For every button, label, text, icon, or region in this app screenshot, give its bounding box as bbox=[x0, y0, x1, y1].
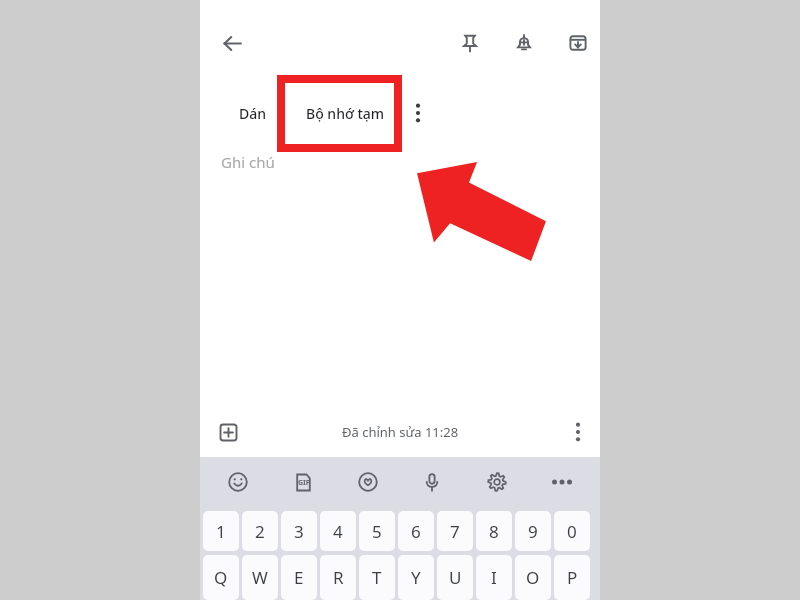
staticText: Bộ nhớ tạm bbox=[306, 104, 385, 123]
staticText: 4 bbox=[333, 520, 343, 543]
staticText: 7 bbox=[450, 520, 460, 543]
staticText: T bbox=[372, 566, 382, 589]
button[interactable]: E bbox=[281, 555, 317, 600]
button[interactable]: Archive bbox=[562, 27, 594, 59]
button[interactable]: Emoji bbox=[223, 467, 253, 497]
staticText: Ghi chú bbox=[221, 152, 275, 172]
button[interactable]: More bbox=[547, 467, 577, 497]
staticText: 2 bbox=[255, 520, 265, 543]
button[interactable]: 6 bbox=[398, 511, 434, 551]
button[interactable]: 4 bbox=[320, 511, 356, 551]
button[interactable]: More options bbox=[403, 88, 433, 138]
button[interactable]: Add bbox=[211, 415, 245, 449]
button[interactable]: Stickers bbox=[353, 467, 383, 497]
button[interactable]: Dán bbox=[218, 88, 288, 138]
button[interactable]: 1 bbox=[203, 511, 239, 551]
button[interactable]: More bbox=[561, 415, 595, 449]
staticText: 5 bbox=[372, 520, 382, 543]
button[interactable]: Voice input bbox=[417, 467, 447, 497]
button[interactable]: Q bbox=[203, 555, 239, 600]
button[interactable]: 2 bbox=[242, 511, 278, 551]
button[interactable]: I bbox=[476, 555, 512, 600]
staticText: 3 bbox=[294, 520, 304, 543]
staticText: E bbox=[294, 566, 304, 589]
button[interactable]: Pin bbox=[454, 27, 486, 59]
button[interactable]: 0 bbox=[554, 511, 590, 551]
staticText: 0 bbox=[567, 520, 577, 543]
button[interactable]: Reminder bbox=[508, 27, 540, 59]
staticText: R bbox=[333, 566, 344, 589]
button[interactable]: 3 bbox=[281, 511, 317, 551]
staticText: Q bbox=[214, 566, 228, 589]
button[interactable]: Settings bbox=[482, 467, 512, 497]
button[interactable]: 5 bbox=[359, 511, 395, 551]
staticText: 8 bbox=[489, 520, 499, 543]
button[interactable]: R bbox=[320, 555, 356, 600]
staticText: Y bbox=[411, 566, 421, 589]
staticText: Đã chỉnh sửa 11:28 bbox=[342, 423, 459, 441]
button[interactable]: T bbox=[359, 555, 395, 600]
staticText: 1 bbox=[216, 520, 226, 543]
button[interactable]: W bbox=[242, 555, 278, 600]
button[interactable]: 9 bbox=[515, 511, 551, 551]
staticText: Dán bbox=[239, 104, 267, 123]
staticText: W bbox=[252, 566, 268, 589]
button[interactable]: 7 bbox=[437, 511, 473, 551]
button[interactable]: Y bbox=[398, 555, 434, 600]
button[interactable]: 8 bbox=[476, 511, 512, 551]
staticText: GIF bbox=[298, 478, 310, 488]
staticText: O bbox=[526, 566, 540, 589]
staticText: I bbox=[491, 566, 497, 589]
button[interactable]: GIF bbox=[288, 467, 318, 497]
staticText: U bbox=[449, 566, 462, 589]
button[interactable]: U bbox=[437, 555, 473, 600]
button[interactable]: P bbox=[554, 555, 590, 600]
staticText: P bbox=[567, 566, 578, 589]
button[interactable]: O bbox=[515, 555, 551, 600]
button[interactable]: Bộ nhớ tạm bbox=[288, 88, 403, 138]
staticText: 6 bbox=[411, 520, 421, 543]
button[interactable]: Back bbox=[216, 27, 248, 59]
staticText: 9 bbox=[528, 520, 538, 543]
